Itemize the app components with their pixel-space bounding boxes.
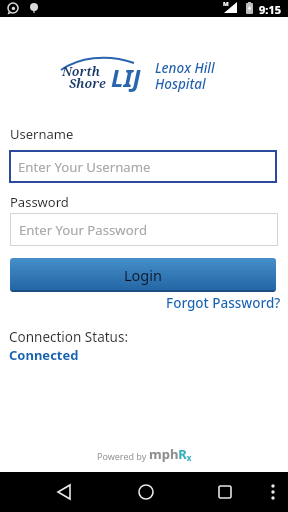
staticText: Connected: [9, 346, 79, 364]
staticText: Password: [10, 193, 69, 211]
staticText: Username: [10, 125, 74, 143]
staticText: Powered by: [97, 450, 149, 462]
staticText: M: [223, 0, 229, 8]
staticText: 9:15: [259, 2, 281, 17]
staticText: Enter Your Password: [19, 221, 148, 239]
button[interactable]: [211, 478, 239, 506]
staticText: Enter Your Username: [18, 158, 151, 176]
button[interactable]: [262, 478, 284, 500]
staticText: Connection Status:: [9, 328, 129, 346]
staticText: Hospital: [155, 75, 206, 93]
staticText: LIJ: [111, 61, 141, 94]
button[interactable]: Login: [10, 258, 276, 292]
button[interactable]: [132, 478, 160, 506]
button[interactable]: Enter Your Username: [9, 150, 277, 183]
staticText: mphRx: [149, 445, 192, 464]
button[interactable]: [50, 478, 78, 506]
button[interactable]: Enter Your Password: [10, 213, 278, 246]
staticText: Login: [124, 265, 162, 285]
staticText: Shore: [69, 75, 106, 92]
staticText: North: [62, 63, 100, 80]
button[interactable]: Forgot Password?: [166, 294, 281, 312]
staticText: Lenox Hill: [155, 59, 215, 77]
